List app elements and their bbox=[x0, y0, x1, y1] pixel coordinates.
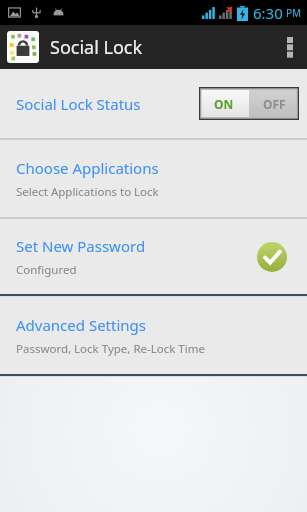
staticText: Configured bbox=[16, 262, 77, 278]
staticText: Social Lock Status bbox=[16, 94, 141, 114]
staticText: Advanced Settings bbox=[16, 315, 146, 335]
staticText: Select Applications to Lock bbox=[16, 184, 159, 200]
staticText: Set New Password bbox=[16, 236, 146, 256]
button[interactable]: More options bbox=[273, 25, 307, 69]
button[interactable]: Social Lock Status toggle, On bbox=[199, 87, 299, 120]
button[interactable]: Set New Password bbox=[0, 219, 307, 294]
staticText: PM bbox=[286, 6, 302, 20]
button[interactable]: Social Lock Status bbox=[0, 69, 307, 138]
staticText: Choose Applications bbox=[16, 158, 159, 178]
staticText: 6:30 bbox=[253, 3, 283, 23]
staticText: OFF bbox=[263, 96, 286, 112]
staticText: ON bbox=[214, 96, 234, 112]
button[interactable]: Social Lock app icon bbox=[7, 31, 39, 63]
button[interactable]: Advanced Settings bbox=[0, 297, 307, 374]
staticText: Password, Lock Type, Re-Lock Time bbox=[16, 341, 205, 357]
staticText: Social Lock bbox=[50, 35, 143, 60]
button[interactable]: Choose Applications bbox=[0, 140, 307, 217]
